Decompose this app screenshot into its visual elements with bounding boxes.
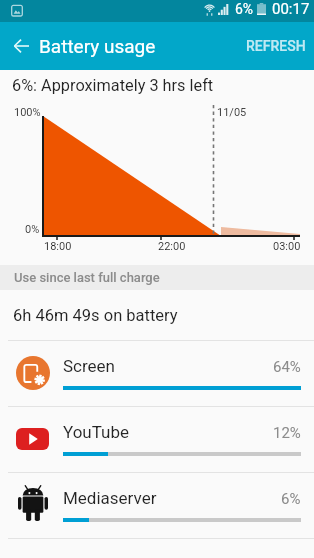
staticText: YouTube	[63, 422, 130, 442]
staticText: Use since last full charge	[14, 270, 160, 285]
staticText: 12%	[273, 424, 301, 442]
staticText: 18:00	[44, 240, 72, 253]
button[interactable]: Screen	[0, 341, 314, 406]
staticText: Screen	[63, 356, 116, 376]
staticText: 6%	[281, 490, 301, 508]
staticText: Mediaserver	[63, 488, 157, 508]
button[interactable]: REFRESH	[238, 28, 314, 64]
staticText: 100%	[14, 106, 41, 119]
staticText: 03:00	[273, 240, 301, 253]
button[interactable]: YouTube	[0, 407, 314, 472]
button[interactable]: Mediaserver	[0, 473, 314, 538]
staticText: 0%	[25, 223, 40, 236]
staticText: 22:00	[158, 240, 186, 253]
staticText: Battery usage	[39, 35, 156, 57]
staticText: 11/05	[217, 106, 247, 119]
staticText: 6h 46m 49s on battery	[13, 306, 178, 325]
staticText: 00:17	[272, 0, 310, 18]
button[interactable]: Back	[0, 22, 43, 70]
staticText: REFRESH	[246, 38, 306, 54]
staticText: 6%: Approximately 3 hrs left	[12, 76, 214, 95]
staticText: 64%	[273, 358, 301, 376]
staticText: 6%	[235, 1, 254, 17]
